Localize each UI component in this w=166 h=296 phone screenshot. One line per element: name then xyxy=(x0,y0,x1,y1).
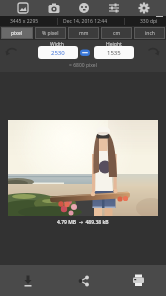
button[interactable]: % pixel xyxy=(35,27,66,39)
button[interactable] xyxy=(56,265,111,296)
button[interactable] xyxy=(146,44,160,58)
button[interactable]: cm xyxy=(101,27,132,39)
button[interactable] xyxy=(38,0,69,16)
staticText: 1535 xyxy=(107,49,121,57)
staticText: pixel xyxy=(11,30,23,37)
staticText: Width xyxy=(50,41,64,48)
staticText: Dec 14, 2016 12:44 xyxy=(63,18,108,25)
button[interactable]: inch xyxy=(134,27,165,39)
button[interactable] xyxy=(5,44,19,58)
staticText: cm xyxy=(113,30,121,37)
button[interactable] xyxy=(0,265,56,296)
button[interactable]: mm xyxy=(68,27,99,39)
staticText: mm xyxy=(79,30,89,37)
staticText: inch xyxy=(145,30,155,37)
button[interactable] xyxy=(129,0,159,16)
button[interactable]: 2530 xyxy=(38,46,78,59)
staticText: 2530 xyxy=(51,49,65,57)
staticText: 330 dpi xyxy=(140,18,158,25)
button[interactable] xyxy=(80,49,91,57)
staticText: 4.79 MB → 489.38 kB xyxy=(57,219,109,226)
button[interactable]: pixel xyxy=(1,27,33,39)
button[interactable] xyxy=(111,265,166,296)
staticText: = 6800 pixel xyxy=(69,62,97,69)
staticText: 3445 x 2295 xyxy=(10,18,39,25)
button[interactable] xyxy=(7,0,38,16)
staticText: Height xyxy=(106,41,122,48)
button[interactable] xyxy=(99,0,129,16)
button[interactable] xyxy=(69,0,99,16)
button[interactable]: 1535 xyxy=(94,46,134,59)
staticText: % pixel xyxy=(42,30,59,37)
